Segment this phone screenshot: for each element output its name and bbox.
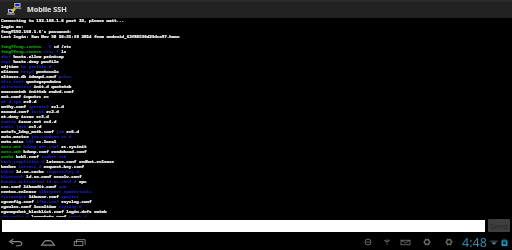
button[interactable]: Recent apps xyxy=(70,234,90,250)
button[interactable]: Send xyxy=(488,219,510,232)
staticText: Send xyxy=(490,221,508,231)
staticText: Mobile SSH xyxy=(27,4,67,14)
button[interactable]: Back xyxy=(6,234,26,250)
button[interactable]: Home xyxy=(38,234,58,250)
staticText: 4:48 xyxy=(462,234,487,250)
staticText: Connecting to 192.168.1.6 port 22, pleas… xyxy=(1,18,180,217)
